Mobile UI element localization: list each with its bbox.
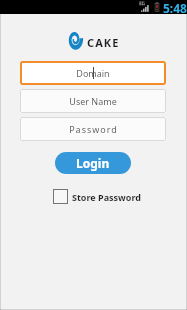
staticText: User Name: [69, 95, 117, 107]
staticText: Store Password: [72, 191, 141, 203]
button[interactable]: Store Password: [53, 189, 141, 204]
button[interactable]: User Name: [20, 89, 166, 113]
staticText: Login: [76, 155, 110, 171]
button[interactable]: Domain: [20, 61, 166, 85]
staticText: CAKE: [87, 35, 120, 50]
button[interactable]: Login: [55, 152, 131, 174]
staticText: Password: [69, 123, 118, 135]
staticText: Domain: [76, 67, 110, 79]
button[interactable]: Password: [20, 117, 166, 141]
staticText: 5:48: [163, 0, 187, 14]
